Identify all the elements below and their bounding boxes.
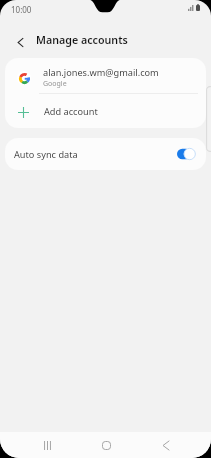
button[interactable]: alan.jones.wm@gmail.com [5, 58, 206, 93]
staticText: Google [43, 79, 67, 89]
staticText: Auto sync data [14, 148, 78, 161]
button[interactable]: Home [92, 432, 121, 458]
button[interactable]: Back [151, 432, 180, 458]
button[interactable]: Recents [33, 432, 61, 458]
button[interactable]: Add account [5, 94, 206, 128]
staticText: 10:00 [11, 4, 32, 15]
button[interactable]: Back [6, 28, 34, 56]
staticText: Manage accounts [36, 33, 128, 48]
staticText: alan.jones.wm@gmail.com [43, 66, 159, 79]
button[interactable]: Auto sync data [5, 138, 206, 170]
staticText: Add account [44, 105, 98, 118]
